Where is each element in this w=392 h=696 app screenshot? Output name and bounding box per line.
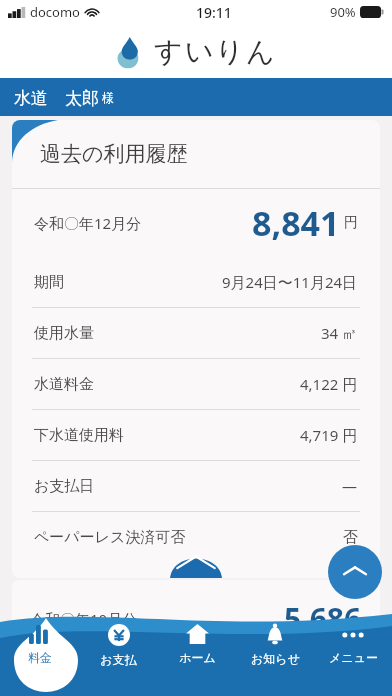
button[interactable]: 期間	[12, 257, 380, 307]
staticText: —	[342, 476, 358, 496]
staticText: 水道 太郎	[14, 86, 99, 109]
staticText: 下水道使用料	[34, 426, 124, 445]
staticText: 水道料金	[34, 375, 94, 394]
staticText: 4,122 円	[300, 374, 358, 394]
button[interactable]: お支払日	[12, 461, 380, 511]
staticText: 4,719 円	[300, 425, 358, 445]
staticText: お支払日	[34, 477, 95, 496]
staticText: お支払	[100, 652, 137, 667]
staticText: 円	[344, 214, 358, 232]
button[interactable]: 料金	[0, 614, 79, 696]
button[interactable]: お知らせ	[236, 614, 314, 696]
button[interactable]: 折りたたむ	[170, 552, 222, 578]
staticText: 否	[343, 528, 358, 547]
button[interactable]: お支払	[79, 614, 158, 696]
button[interactable]: メニュー	[314, 614, 392, 696]
staticText: すいりん	[154, 34, 277, 69]
staticText: 料金	[28, 650, 52, 665]
staticText: 5,686	[284, 598, 362, 639]
button[interactable]: ホーム	[158, 614, 236, 696]
staticText: 令和〇年10月分	[30, 609, 138, 629]
staticText: 34 ㎥	[321, 323, 358, 343]
staticText: 使用水量	[34, 324, 94, 343]
button[interactable]: 水道 太郎	[0, 78, 392, 116]
button[interactable]: 下水道使用料	[12, 410, 380, 460]
button[interactable]: 使用水量	[12, 308, 380, 358]
staticText: 90%	[330, 3, 356, 21]
staticText: 9月24日〜11月24日	[222, 272, 358, 292]
staticText: 令和〇年12月分	[34, 213, 142, 233]
button[interactable]: 水道料金	[12, 359, 380, 409]
staticText: 様	[102, 90, 114, 105]
button[interactable]: 上へスクロール	[328, 545, 382, 599]
button[interactable]: ペーパーレス決済可否	[12, 512, 380, 562]
staticText: メニュー	[329, 650, 378, 665]
staticText: お知らせ	[251, 651, 300, 666]
staticText: ホーム	[179, 650, 216, 665]
staticText: 8,841	[252, 200, 340, 246]
staticText: 19:11	[196, 3, 232, 22]
staticText: 期間	[34, 273, 64, 292]
staticText: docomo	[30, 3, 80, 21]
staticText: 過去の利用履歴	[40, 141, 188, 167]
staticText: ペーパーレス決済可否	[34, 528, 186, 547]
